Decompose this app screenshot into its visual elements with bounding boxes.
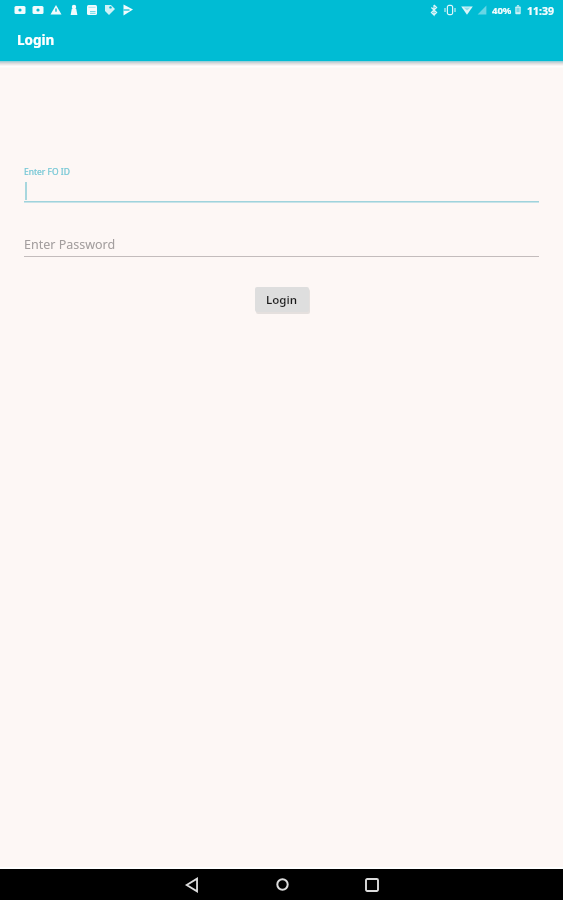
staticText: Enter FO ID xyxy=(24,166,70,178)
staticText: Login xyxy=(17,31,55,49)
button[interactable]: Enter Password xyxy=(24,232,539,259)
staticText: Login xyxy=(266,292,298,308)
button[interactable]: Back xyxy=(162,869,222,900)
staticText: 11:39 xyxy=(527,4,554,18)
button[interactable]: Enter FO ID xyxy=(24,162,539,204)
staticText: Enter Password xyxy=(24,236,116,253)
button[interactable]: Home xyxy=(252,869,312,900)
button[interactable]: Login xyxy=(255,287,309,312)
button[interactable]: Recents xyxy=(342,869,402,900)
staticText: 40% xyxy=(492,4,512,17)
